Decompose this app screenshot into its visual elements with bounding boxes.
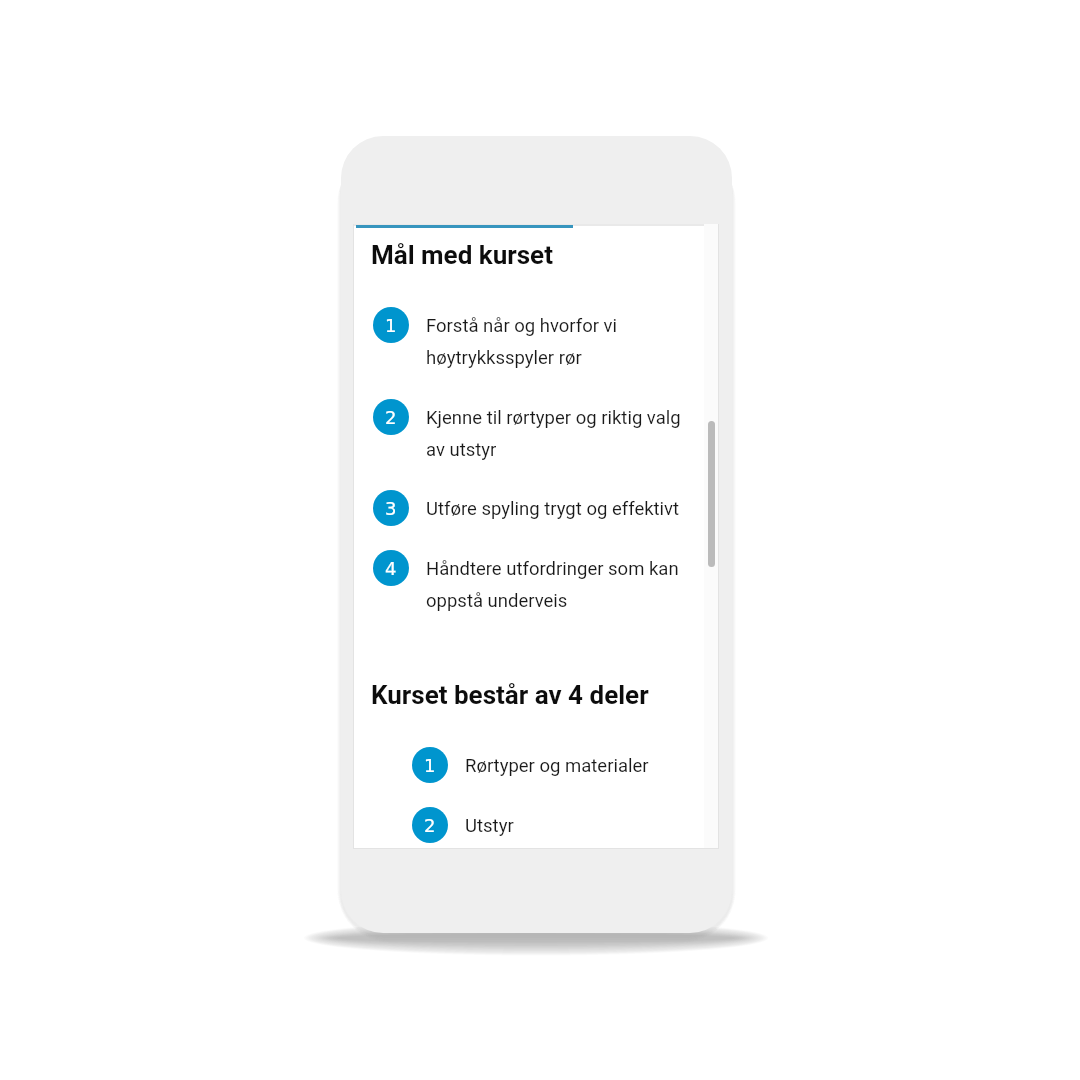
button[interactable]: 1: [373, 307, 678, 370]
staticText: Utstyr: [465, 815, 514, 837]
button[interactable]: 2: [373, 399, 678, 462]
staticText: 2: [424, 815, 436, 836]
button[interactable]: 2: [412, 807, 678, 843]
staticText: 2: [385, 407, 397, 428]
staticText: 4: [385, 558, 397, 579]
staticText: 3: [385, 498, 397, 519]
staticText: 1: [424, 755, 436, 776]
staticText: Forstå når og hvorfor vi høytrykksspyler…: [426, 315, 618, 368]
button[interactable]: 4: [373, 550, 678, 613]
staticText: Mål med kurset: [371, 240, 553, 270]
staticText: Kjenne til rørtyper og riktig valg av ut…: [426, 407, 681, 460]
staticText: Utføre spyling trygt og effektivt: [426, 498, 680, 520]
button[interactable]: 1: [412, 747, 678, 783]
staticText: Rørtyper og materialer: [465, 755, 649, 777]
staticText: Kurset består av 4 deler: [371, 680, 649, 710]
button[interactable]: 3: [373, 490, 678, 526]
staticText: Håndtere utfordringer som kan oppstå und…: [426, 558, 679, 611]
staticText: 1: [385, 315, 397, 336]
